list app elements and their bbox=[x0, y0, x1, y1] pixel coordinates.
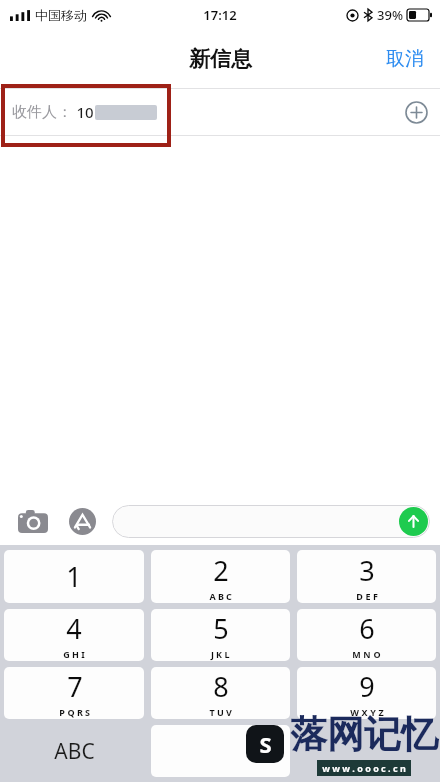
staticText: O bbox=[373, 648, 381, 660]
staticText: C bbox=[226, 590, 232, 602]
staticText: 3 bbox=[359, 552, 375, 589]
button[interactable]: Send bbox=[112, 505, 430, 538]
staticText: A bbox=[209, 590, 216, 602]
button[interactable]: 1 bbox=[4, 550, 144, 603]
staticText: U bbox=[217, 706, 224, 718]
staticText: Z bbox=[378, 706, 384, 718]
staticText: 2 bbox=[213, 552, 229, 589]
staticText: P bbox=[59, 706, 65, 718]
staticText: 17:12 bbox=[203, 6, 237, 24]
button[interactable]: 3 bbox=[297, 550, 436, 603]
staticText: B bbox=[218, 590, 224, 602]
staticText: L bbox=[224, 648, 230, 660]
button[interactable]: 2 bbox=[151, 550, 290, 603]
staticText: 5 bbox=[213, 610, 229, 647]
staticText: 7 bbox=[67, 668, 83, 705]
staticText: S bbox=[259, 729, 272, 759]
button[interactable]: 8 bbox=[151, 667, 290, 719]
staticText: 1 bbox=[66, 558, 82, 595]
staticText: 10 bbox=[76, 102, 94, 122]
staticText: 4 bbox=[66, 610, 82, 647]
staticText: N bbox=[363, 648, 371, 660]
staticText: Q bbox=[67, 706, 75, 718]
staticText: T bbox=[209, 706, 215, 718]
button[interactable] bbox=[151, 725, 290, 777]
button[interactable]: 5 bbox=[151, 609, 290, 661]
button[interactable]: 6 bbox=[297, 609, 436, 661]
staticText: W bbox=[350, 706, 359, 718]
button[interactable]: Send bbox=[399, 507, 428, 536]
staticText: 39% bbox=[377, 6, 403, 24]
staticText: 8 bbox=[213, 668, 229, 705]
staticText: S bbox=[85, 706, 90, 718]
staticText: w w w . o o o c . c n bbox=[322, 762, 406, 774]
staticText: ABC bbox=[54, 737, 95, 766]
button[interactable]: ABC bbox=[4, 725, 144, 777]
button[interactable]: 取消 bbox=[370, 37, 440, 81]
button[interactable]: 9 bbox=[297, 667, 436, 719]
staticText: 收件人： bbox=[12, 103, 72, 122]
staticText: H bbox=[72, 648, 79, 660]
staticText: E bbox=[365, 590, 371, 602]
button[interactable]: 7 bbox=[4, 667, 144, 719]
staticText: X bbox=[361, 706, 368, 718]
staticText: 落网记忆 bbox=[290, 711, 438, 758]
staticText: D bbox=[356, 590, 363, 602]
staticText: 9 bbox=[359, 668, 375, 705]
button[interactable]: 4 bbox=[4, 609, 144, 661]
staticText: F bbox=[373, 590, 378, 602]
staticText: R bbox=[77, 706, 83, 718]
button[interactable]: App Store bbox=[65, 504, 100, 539]
staticText: J bbox=[211, 648, 214, 660]
staticText: 中国移动 bbox=[35, 7, 87, 23]
staticText: 6 bbox=[359, 610, 375, 647]
staticText: 新信息 bbox=[189, 46, 252, 72]
staticText: K bbox=[216, 648, 222, 660]
button[interactable]: Camera bbox=[14, 506, 52, 537]
staticText: I bbox=[81, 648, 85, 660]
staticText: V bbox=[226, 706, 232, 718]
button[interactable]: Add contact bbox=[393, 101, 440, 124]
staticText: Y bbox=[370, 706, 376, 718]
staticText: G bbox=[63, 648, 70, 660]
button[interactable]: 收件人： bbox=[0, 89, 440, 135]
staticText: M bbox=[352, 648, 361, 660]
staticText: 取消 bbox=[386, 47, 424, 71]
